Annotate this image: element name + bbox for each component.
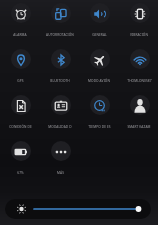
staticText: TIEMPO DE ES xyxy=(88,125,111,129)
staticText: AUTORROTACIÓN xyxy=(46,33,74,37)
staticText: CONEXIÓN DE xyxy=(9,125,32,129)
button[interactable]: GENERAL xyxy=(79,0,119,44)
staticText: ALARMA xyxy=(13,33,27,37)
staticText: GENERAL xyxy=(92,33,107,37)
button[interactable]: GPS xyxy=(0,46,40,90)
button[interactable]: CONEXIÓN DE xyxy=(0,92,40,136)
button[interactable]: Brightness xyxy=(5,199,151,219)
button[interactable]: BLUETOOTH xyxy=(40,46,80,90)
button[interactable]: MÁS xyxy=(40,138,80,182)
button[interactable]: AUTORROTACIÓN xyxy=(40,0,80,44)
button[interactable]: THOMLON0587 xyxy=(119,46,158,90)
staticText: MODO AVIÓN xyxy=(88,79,110,83)
button[interactable]: SMART KAZAM xyxy=(119,92,158,136)
staticText: THOMLON0587 xyxy=(127,79,152,83)
staticText: GPS xyxy=(17,79,24,83)
staticText: VIBRACIÓN xyxy=(130,33,148,37)
staticText: MÁS xyxy=(57,171,64,175)
button[interactable]: TIEMPO DE ES xyxy=(79,92,119,136)
button[interactable]: ALARMA xyxy=(0,0,40,44)
staticText: 67% xyxy=(17,171,24,175)
staticText: SMART KAZAM xyxy=(127,125,151,129)
button[interactable]: 67% xyxy=(0,138,40,182)
button[interactable]: MODO AVIÓN xyxy=(79,46,119,90)
staticText: MODALIDAD D xyxy=(48,125,72,129)
button[interactable]: VIBRACIÓN xyxy=(119,0,158,44)
button[interactable]: MODALIDAD D xyxy=(40,92,80,136)
staticText: BLUETOOTH xyxy=(50,79,70,83)
